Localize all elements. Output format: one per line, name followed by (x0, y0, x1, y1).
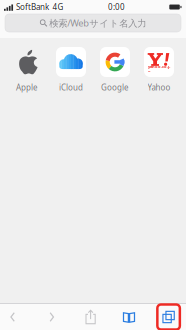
staticText: SoftBank (16, 2, 49, 12)
button[interactable]: Tabs (155, 304, 182, 330)
staticText: Yahoo (147, 82, 170, 93)
button[interactable]: Forward (25, 304, 78, 330)
button[interactable]: Bookmarks (103, 304, 155, 330)
staticText: iCloud (59, 82, 83, 93)
button[interactable]: 検索/Webサイト名入力 (5, 14, 181, 32)
button[interactable]: Share (78, 304, 103, 330)
staticText: 0:00 (108, 2, 125, 12)
button[interactable]: yahoo.co.jp (137, 47, 181, 93)
staticText: 4G (52, 2, 63, 12)
staticText: Google (101, 82, 129, 93)
staticText: yahoo.co.jp (148, 64, 170, 74)
staticText: Apple (16, 82, 38, 93)
button[interactable]: iCloud (49, 47, 93, 93)
staticText: 検索/Webサイト名入力 (49, 17, 146, 29)
button[interactable]: Apple (5, 47, 49, 93)
button[interactable]: Google (93, 47, 137, 93)
button[interactable]: Back (0, 304, 25, 330)
